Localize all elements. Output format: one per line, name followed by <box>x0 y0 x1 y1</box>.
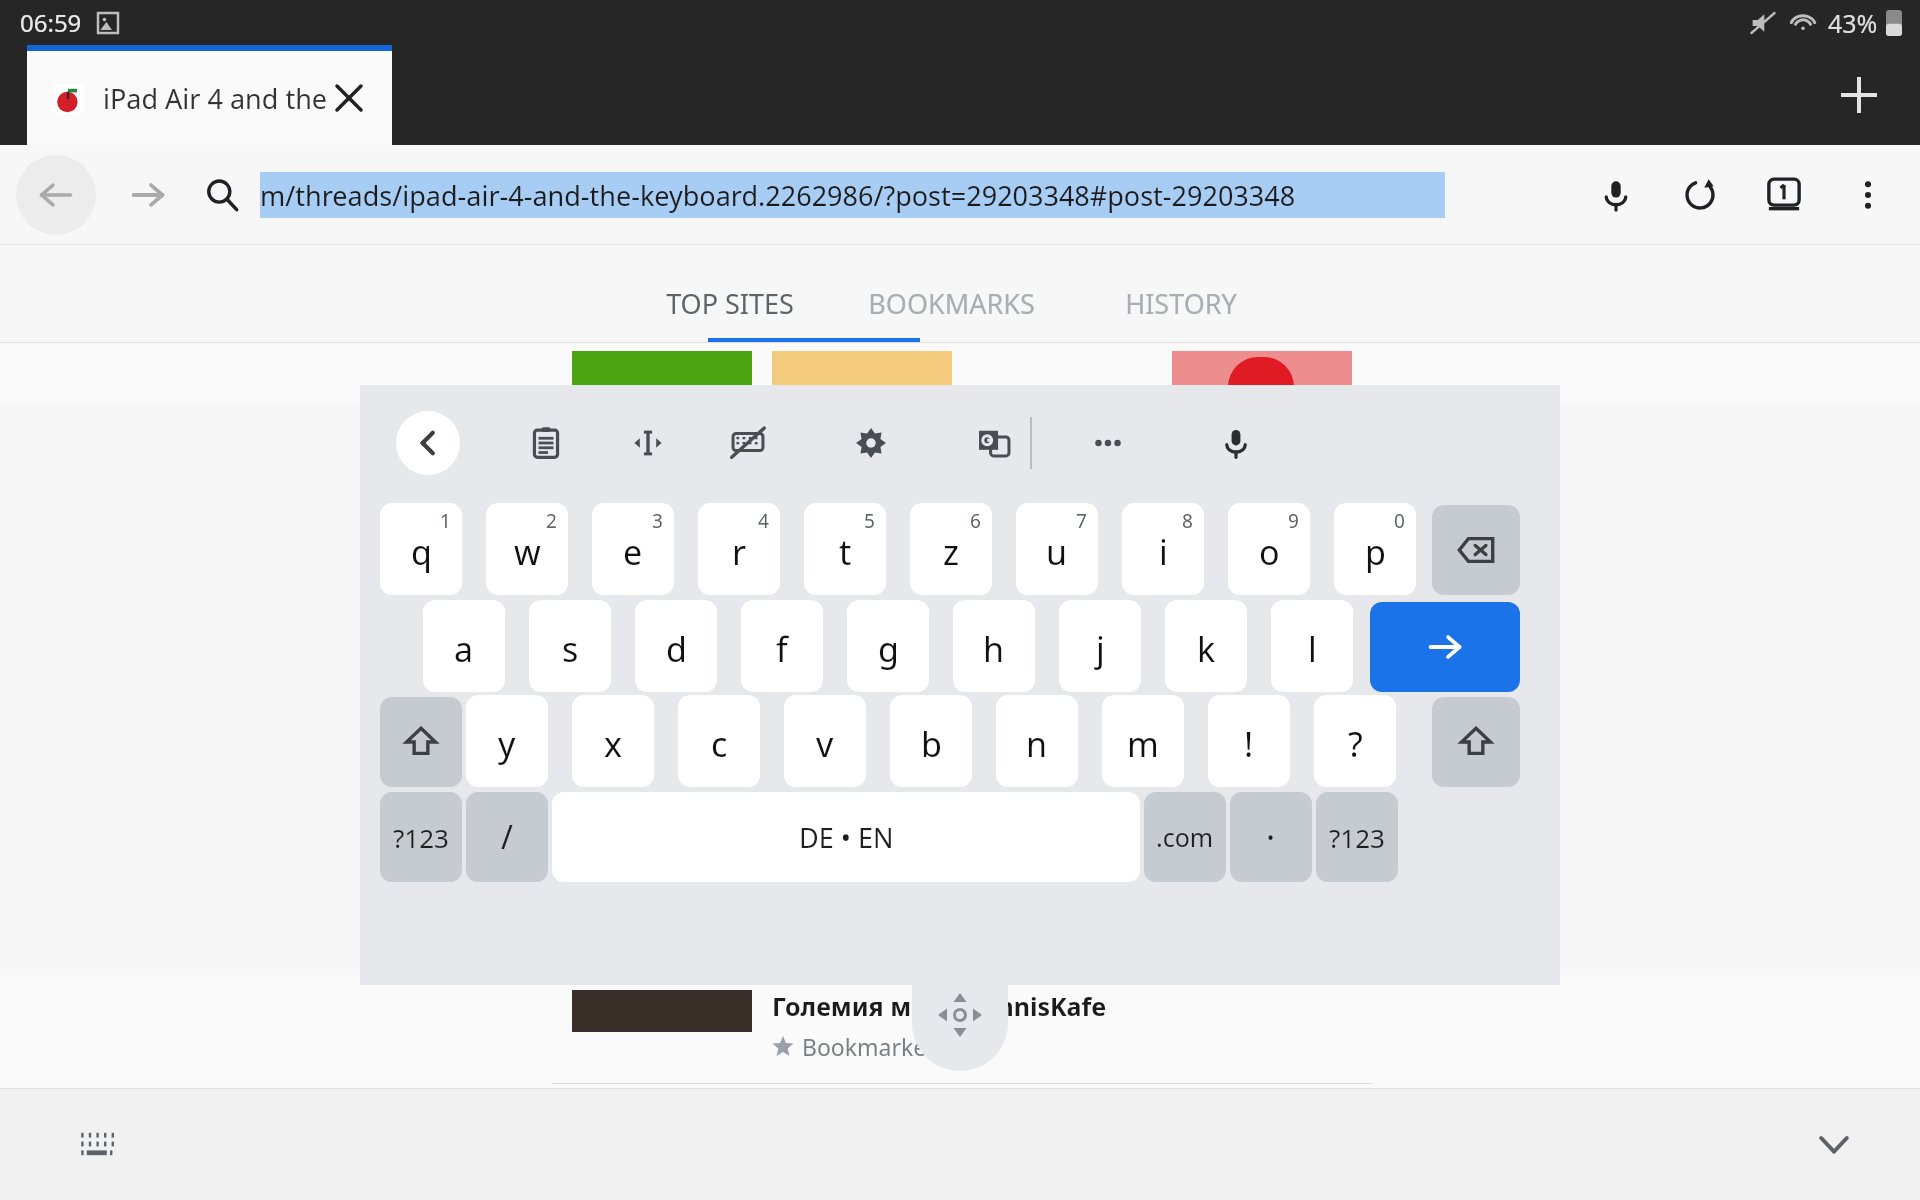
button[interactable]: v <box>784 695 866 787</box>
staticText: l <box>1308 626 1317 672</box>
button[interactable]: c <box>678 695 760 787</box>
staticText: k <box>1197 626 1216 672</box>
staticText: 0 <box>1394 508 1405 534</box>
button[interactable]: Hide keyboard <box>712 407 784 479</box>
button[interactable]: h <box>953 600 1035 692</box>
button[interactable]: 9 <box>1228 503 1310 595</box>
button[interactable]: .com <box>1144 792 1226 882</box>
button[interactable]: y <box>466 695 548 787</box>
button[interactable]: · <box>1230 792 1312 882</box>
button[interactable]: Shift <box>380 697 462 787</box>
staticText: x <box>604 721 622 767</box>
button[interactable]: Shift right <box>1432 697 1520 787</box>
button[interactable]: Translate <box>958 407 1030 479</box>
staticText: f <box>776 626 788 672</box>
staticText: m <box>1127 721 1159 767</box>
button[interactable]: 8 <box>1122 503 1204 595</box>
staticText: e <box>623 529 643 575</box>
button[interactable]: Enter <box>1370 602 1520 692</box>
staticText: ! <box>1244 721 1254 767</box>
staticText: t <box>839 529 852 575</box>
staticText: DE • EN <box>799 819 894 856</box>
staticText: i <box>1159 529 1168 575</box>
staticText: .com <box>1156 820 1214 854</box>
button[interactable]: k <box>1165 600 1247 692</box>
button[interactable]: More options <box>1826 153 1910 237</box>
button[interactable]: Move cursor <box>612 407 684 479</box>
staticText: v <box>816 721 834 767</box>
button[interactable]: Forward <box>112 159 184 231</box>
staticText: ? <box>1348 721 1363 767</box>
staticText: ?123 <box>1329 820 1385 855</box>
button[interactable]: ? <box>1314 695 1396 787</box>
button[interactable]: Show keyboard <box>62 1108 134 1180</box>
button[interactable]: m <box>1102 695 1184 787</box>
button[interactable]: d <box>635 600 717 692</box>
button[interactable]: Settings <box>835 407 907 479</box>
button[interactable]: Clipboard <box>510 407 582 479</box>
button[interactable]: a <box>423 600 505 692</box>
staticText: h <box>983 626 1005 672</box>
button[interactable]: 7 <box>1016 503 1098 595</box>
staticText: u <box>1046 529 1068 575</box>
button[interactable]: n <box>996 695 1078 787</box>
button[interactable]: g <box>847 600 929 692</box>
staticText: q <box>411 529 432 575</box>
staticText: 9 <box>1288 508 1299 534</box>
button[interactable]: x <box>572 695 654 787</box>
staticText: ?123 <box>393 820 449 855</box>
button[interactable]: m/threads/ipad-air-4-and-the-keyboard.22… <box>205 160 1445 230</box>
button[interactable]: 1 <box>380 503 462 595</box>
staticText: HISTORY <box>1125 285 1237 322</box>
staticText: 06:59 <box>20 6 82 39</box>
staticText: Bookmarked <box>802 1031 941 1062</box>
staticText: · <box>1266 814 1276 860</box>
staticText: y <box>498 721 516 767</box>
staticText: BOOKMARKS <box>868 285 1035 322</box>
button[interactable]: Voice search <box>1574 153 1658 237</box>
button[interactable]: Voice input <box>1200 407 1272 479</box>
button[interactable]: New tab <box>1824 60 1894 130</box>
button[interactable]: 4 <box>698 503 780 595</box>
staticText: b <box>921 721 942 767</box>
button[interactable]: 2 <box>486 503 568 595</box>
button[interactable]: b <box>890 695 972 787</box>
button[interactable]: s <box>529 600 611 692</box>
staticText: d <box>666 626 687 672</box>
staticText: s <box>562 626 579 672</box>
staticText: iPad Air 4 and the <box>103 80 328 117</box>
button[interactable]: / <box>466 792 548 882</box>
button[interactable]: Move keyboard <box>912 975 1008 1071</box>
button[interactable]: ?123 <box>380 792 462 882</box>
button[interactable]: Collapse toolbar <box>396 411 460 475</box>
button[interactable]: HISTORY <box>1066 263 1296 343</box>
button[interactable]: 6 <box>910 503 992 595</box>
button[interactable]: Hide <box>1798 1108 1870 1180</box>
button[interactable]: Close tab <box>328 77 370 119</box>
staticText: o <box>1259 529 1280 575</box>
button[interactable]: Back <box>16 155 96 235</box>
button[interactable]: ! <box>1208 695 1290 787</box>
button[interactable]: 5 <box>804 503 886 595</box>
button[interactable]: 0 <box>1334 503 1416 595</box>
staticText: m/threads/ipad-air-4-and-the-keyboard.22… <box>260 177 1296 214</box>
staticText: 4 <box>758 508 769 534</box>
button[interactable]: More <box>1072 407 1144 479</box>
button[interactable]: TOP SITES <box>624 263 836 343</box>
staticText: 6 <box>970 508 981 534</box>
staticText: n <box>1026 721 1048 767</box>
button[interactable]: f <box>741 600 823 692</box>
button[interactable]: BOOKMARKS <box>836 263 1066 343</box>
button[interactable]: l <box>1271 600 1353 692</box>
button[interactable]: Backspace <box>1432 505 1520 595</box>
button[interactable]: DE • EN <box>552 792 1140 882</box>
button[interactable]: ?123 <box>1316 792 1398 882</box>
button[interactable]: 3 <box>592 503 674 595</box>
staticText: j <box>1096 626 1105 672</box>
staticText: r <box>732 529 747 575</box>
button[interactable]: j <box>1059 600 1141 692</box>
button[interactable]: Tabs <box>1742 153 1826 237</box>
button[interactable]: iPad Air 4 and the <box>27 45 392 145</box>
button[interactable]: Reload <box>1658 153 1742 237</box>
staticText: c <box>711 721 728 767</box>
